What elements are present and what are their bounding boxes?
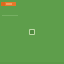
button[interactable]: Navigation menu xyxy=(1,2,16,6)
button[interactable] xyxy=(29,29,35,35)
